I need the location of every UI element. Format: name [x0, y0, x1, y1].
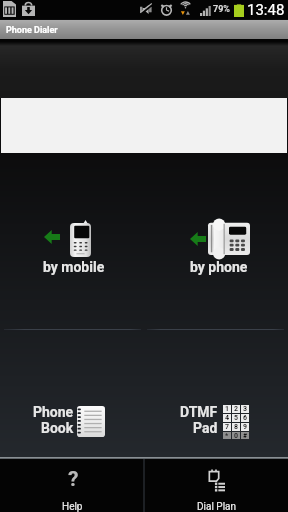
other: Help: [68, 467, 79, 492]
staticText: 8: [234, 423, 239, 431]
staticText: 6: [243, 414, 248, 422]
staticText: 4: [225, 414, 230, 422]
staticText: Help: [62, 501, 83, 512]
staticText: 0: [234, 432, 239, 439]
staticText: Pad: [193, 420, 218, 436]
staticText: 2: [234, 405, 239, 413]
staticText: DTMF: [180, 404, 218, 420]
button[interactable]: by phone: [144, 205, 288, 280]
staticText: 7: [225, 423, 230, 431]
staticText: 5: [234, 414, 239, 422]
staticText: Dial Plan: [197, 501, 237, 512]
button[interactable]: DTMF: [144, 398, 288, 442]
staticText: 3: [243, 405, 248, 413]
staticText: Phone Dialer: [6, 25, 58, 36]
other: Dial Plan: [207, 469, 225, 491]
staticText: *: [225, 432, 229, 439]
staticText: by phone: [190, 259, 248, 275]
staticText: Phone: [33, 404, 74, 420]
button[interactable]: Phone: [0, 398, 144, 442]
staticText: 79%: [213, 4, 230, 15]
staticText: #: [243, 432, 248, 439]
staticText: 1: [225, 405, 230, 413]
button[interactable]: Dial Plan: [145, 459, 288, 512]
staticText: ?: [68, 467, 79, 492]
button[interactable]: Help: [0, 459, 143, 512]
staticText: 13:48: [247, 1, 285, 19]
staticText: Book: [41, 420, 74, 436]
staticText: by mobile: [43, 259, 105, 275]
staticText: 9: [243, 423, 248, 431]
button[interactable]: by mobile: [0, 205, 144, 280]
